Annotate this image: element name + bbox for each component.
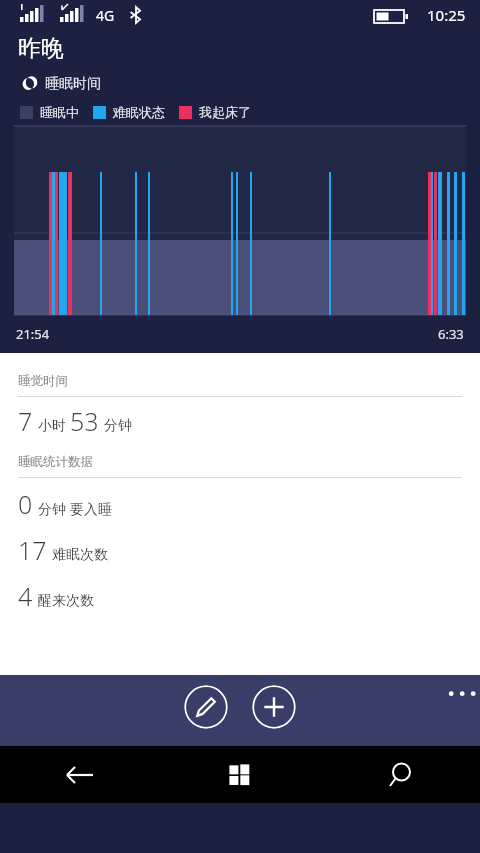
staticText: 睡觉时间	[18, 373, 68, 389]
button[interactable]: Edit	[184, 685, 228, 729]
other: Bluetooth	[128, 5, 144, 25]
staticText: 17	[18, 533, 47, 567]
staticText: 醒来次数	[38, 592, 94, 610]
staticText: 10:25	[427, 5, 466, 25]
staticText: 睡眠中	[40, 104, 79, 120]
staticText: 53	[70, 404, 99, 438]
staticText: 7	[18, 404, 33, 438]
button[interactable]: Start	[160, 746, 320, 803]
button[interactable]: More options	[432, 675, 480, 709]
staticText: 睡眠统计数据	[18, 454, 93, 470]
staticText: 小时	[38, 417, 66, 435]
staticText: 4	[18, 579, 33, 613]
button[interactable]: Add	[252, 685, 296, 729]
staticText: 难眠次数	[52, 546, 108, 564]
staticText: 我起床了	[199, 104, 251, 120]
staticText: 21:54	[16, 325, 50, 343]
staticText: 分钟	[104, 417, 132, 435]
staticText: 睡眠时间	[45, 75, 101, 93]
staticText: 4G	[96, 6, 115, 25]
button[interactable]: Back	[0, 746, 160, 803]
staticText: 0	[18, 487, 33, 521]
button[interactable]: Search	[320, 746, 480, 803]
staticText: 6:33	[438, 325, 464, 343]
staticText: 分钟 要入睡	[38, 499, 112, 518]
staticText: 昨晚	[18, 34, 64, 63]
staticText: 难眠状态	[113, 104, 165, 120]
